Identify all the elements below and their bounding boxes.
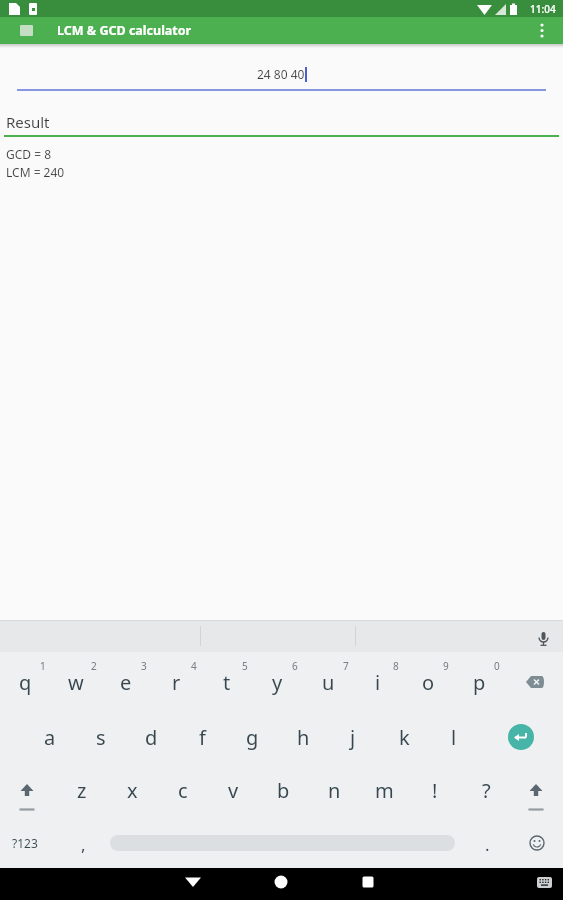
staticText: w <box>68 669 84 696</box>
button[interactable]: t <box>205 660 249 704</box>
staticText: o <box>422 669 435 696</box>
button[interactable]: ? <box>464 768 508 812</box>
staticText: i <box>375 669 381 696</box>
staticText: l <box>451 724 457 751</box>
staticText: a <box>44 724 56 751</box>
staticText: c <box>178 777 188 804</box>
staticText: 2 <box>91 659 97 673</box>
staticText: r <box>172 669 181 696</box>
button[interactable]: s <box>79 715 123 759</box>
button[interactable]: y <box>255 660 299 704</box>
staticText: q <box>19 669 32 696</box>
button[interactable]: b <box>261 768 305 812</box>
staticText: x <box>127 777 138 804</box>
staticText: ? <box>482 777 491 804</box>
button[interactable]: . <box>472 822 502 866</box>
staticText: ?123 <box>12 835 38 851</box>
staticText: s <box>96 724 106 751</box>
button[interactable] <box>508 724 534 750</box>
button[interactable]: r <box>154 660 198 704</box>
button[interactable]: j <box>331 715 375 759</box>
button[interactable]: g <box>230 715 274 759</box>
staticText: ! <box>432 777 438 804</box>
staticText: GCD = 8 <box>6 146 52 162</box>
staticText: , <box>81 833 86 856</box>
button[interactable] <box>514 768 558 812</box>
button[interactable] <box>0 868 187 900</box>
staticText: LCM = 240 <box>6 164 65 180</box>
button[interactable] <box>20 25 33 36</box>
staticText: 24 80 40 <box>257 66 305 82</box>
button[interactable] <box>375 868 563 900</box>
staticText: y <box>272 669 283 696</box>
button[interactable] <box>5 768 49 812</box>
staticText: p <box>473 669 486 696</box>
staticText: 1 <box>40 659 46 673</box>
staticText: 5 <box>242 659 248 673</box>
button[interactable]: a <box>28 715 72 759</box>
button[interactable]: i <box>356 660 400 704</box>
button[interactable]: z <box>60 768 104 812</box>
staticText: 9 <box>443 659 449 673</box>
button[interactable] <box>513 660 557 704</box>
staticText: j <box>350 724 356 751</box>
staticText: f <box>199 724 206 751</box>
staticText: e <box>120 669 132 696</box>
button[interactable]: p <box>457 660 501 704</box>
button[interactable]: v <box>211 768 255 812</box>
button[interactable] <box>515 821 559 865</box>
staticText: h <box>297 724 310 751</box>
staticText: 4 <box>191 659 197 673</box>
staticText: LCM & GCD calculator <box>57 22 192 39</box>
staticText: g <box>246 724 259 751</box>
button[interactable]: f <box>180 715 224 759</box>
staticText: . <box>485 833 490 856</box>
button[interactable]: o <box>406 660 450 704</box>
button[interactable]: c <box>161 768 205 812</box>
button[interactable]: x <box>110 768 154 812</box>
button[interactable]: u <box>306 660 350 704</box>
button[interactable]: , <box>68 822 98 866</box>
staticText: z <box>77 777 87 804</box>
staticText: v <box>228 777 239 804</box>
staticText: b <box>277 777 290 804</box>
button[interactable]: w <box>54 660 98 704</box>
staticText: m <box>375 777 394 804</box>
button[interactable]: n <box>312 768 356 812</box>
button[interactable]: m <box>362 768 406 812</box>
button[interactable] <box>533 17 563 44</box>
staticText: n <box>328 777 341 804</box>
button[interactable]: ?123 <box>3 821 47 865</box>
button[interactable]: h <box>281 715 325 759</box>
button[interactable]: q <box>3 660 47 704</box>
staticText: 3 <box>141 659 147 673</box>
staticText: 0 <box>494 659 500 673</box>
button[interactable] <box>187 868 375 900</box>
staticText: k <box>399 724 410 751</box>
button[interactable]: l <box>432 715 476 759</box>
button[interactable]: ! <box>413 768 457 812</box>
staticText: 7 <box>343 659 349 673</box>
staticText: t <box>223 669 231 696</box>
staticText: 8 <box>393 659 399 673</box>
staticText: 11:04 <box>530 2 556 16</box>
staticText: 6 <box>292 659 298 673</box>
staticText: d <box>145 724 158 751</box>
button[interactable]: e <box>104 660 148 704</box>
staticText: u <box>322 669 335 696</box>
button[interactable]: k <box>382 715 426 759</box>
button[interactable]: d <box>129 715 173 759</box>
staticText: Result <box>6 112 50 132</box>
